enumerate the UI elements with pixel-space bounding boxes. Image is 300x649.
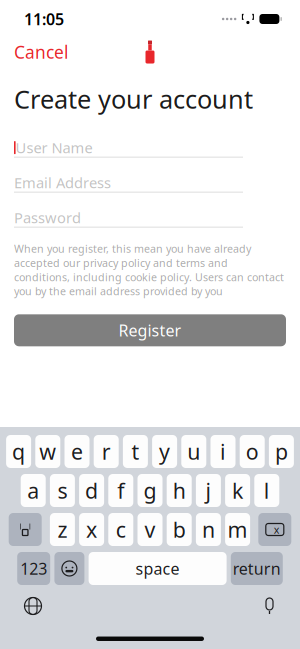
button[interactable]: k xyxy=(225,474,250,507)
button[interactable]: return xyxy=(231,552,283,585)
button[interactable]: w xyxy=(35,435,60,468)
button[interactable]: m xyxy=(225,513,250,546)
staticText: Register xyxy=(118,320,181,341)
button[interactable]: b xyxy=(167,513,192,546)
button[interactable]: Shift xyxy=(9,513,42,546)
staticText: j xyxy=(205,476,211,505)
staticText: i xyxy=(220,437,226,466)
button[interactable]: j xyxy=(196,474,221,507)
staticText: c xyxy=(116,515,126,544)
button[interactable]: x xyxy=(79,513,104,546)
button[interactable]: l xyxy=(254,474,279,507)
staticText: Email Address xyxy=(14,173,111,192)
staticText: User Name xyxy=(16,138,93,157)
staticText: d xyxy=(85,476,98,505)
button[interactable]: u xyxy=(181,435,206,468)
button[interactable]: Delete xyxy=(258,513,291,546)
staticText: return xyxy=(233,558,281,579)
staticText: l xyxy=(264,476,270,505)
button[interactable]: q xyxy=(6,435,31,468)
staticText: t xyxy=(131,437,139,466)
staticText: x xyxy=(274,522,280,537)
button[interactable]: Next keyboard xyxy=(24,597,42,615)
staticText: space xyxy=(136,558,180,579)
button[interactable]: r xyxy=(94,435,119,468)
button[interactable]: space xyxy=(89,552,227,585)
button[interactable]: s xyxy=(50,474,75,507)
button[interactable]: d xyxy=(79,474,104,507)
button[interactable]: v xyxy=(137,513,162,546)
button[interactable]: p xyxy=(269,435,294,468)
staticText: s xyxy=(57,476,67,505)
button[interactable]: z xyxy=(50,513,75,546)
staticText: Create your account xyxy=(14,82,253,116)
staticText: a xyxy=(27,476,39,505)
staticText: n xyxy=(202,515,215,544)
button[interactable]: Register xyxy=(14,314,286,346)
button[interactable]: i xyxy=(210,435,235,468)
button[interactable]: h xyxy=(167,474,192,507)
button[interactable]: y xyxy=(152,435,177,468)
staticText: z xyxy=(57,515,67,544)
staticText: w xyxy=(39,437,56,466)
staticText: q xyxy=(12,437,25,466)
button[interactable]: g xyxy=(137,474,162,507)
staticText: f xyxy=(117,476,124,505)
staticText: r xyxy=(102,437,111,466)
button[interactable]: n xyxy=(196,513,221,546)
staticText: m xyxy=(228,515,248,544)
button[interactable]: a xyxy=(21,474,46,507)
staticText: u xyxy=(187,437,200,466)
staticText: h xyxy=(173,476,186,505)
staticText: y xyxy=(159,437,170,466)
staticText: 11:05 xyxy=(24,8,64,30)
button[interactable]: t xyxy=(123,435,148,468)
button[interactable]: o xyxy=(240,435,265,468)
button[interactable]: f xyxy=(108,474,133,507)
button[interactable]: c xyxy=(108,513,133,546)
staticText: Cancel xyxy=(14,40,68,63)
staticText: Password xyxy=(14,208,81,227)
staticText: p xyxy=(275,437,288,466)
staticText: v xyxy=(144,515,155,544)
staticText: o xyxy=(246,437,259,466)
staticText: When you register, this mean you have al… xyxy=(14,242,284,298)
button[interactable]: Emoji xyxy=(54,552,84,585)
staticText: e xyxy=(71,437,83,466)
staticText: k xyxy=(232,476,243,505)
staticText: b xyxy=(173,515,186,544)
staticText: g xyxy=(143,476,156,505)
button[interactable]: e xyxy=(64,435,89,468)
button[interactable]: 123 xyxy=(17,552,50,585)
staticText: 123 xyxy=(20,558,47,579)
button[interactable]: Cancel xyxy=(0,34,78,69)
staticText: x xyxy=(86,515,97,544)
button[interactable]: Dictation xyxy=(263,597,276,615)
